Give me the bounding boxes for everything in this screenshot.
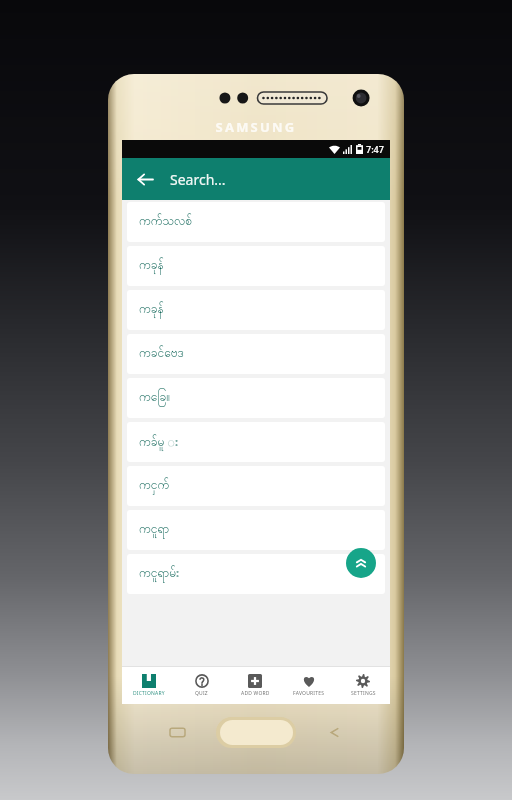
staticText: ကခုန် (139, 257, 164, 275)
staticText: ကငှက် (139, 477, 170, 495)
staticText: DICTIONARY (133, 690, 165, 697)
button[interactable]: ကငူရာ (127, 510, 385, 550)
button[interactable]: ကခြေ။ (127, 378, 385, 418)
staticText: 7:47 (366, 143, 384, 155)
button[interactable]: ကငှက် (127, 466, 385, 506)
staticText: Search... (170, 170, 226, 189)
staticText: QUIZ (195, 690, 208, 697)
button[interactable]: Back (128, 162, 162, 196)
staticText: ကခ်မူ း (139, 433, 178, 452)
staticText: ကခြေ။ (139, 389, 170, 407)
staticText: ကငူရာ (139, 521, 170, 539)
staticText: ကခုန် (139, 301, 164, 319)
button[interactable]: Scroll to top (346, 548, 376, 578)
button[interactable]: SETTINGS (336, 666, 390, 704)
staticText: ကခင်ဗေဒ (139, 345, 184, 363)
staticText: FAVOURITES (293, 690, 325, 697)
button[interactable]: ADD WORD (228, 666, 282, 704)
button[interactable]: ကခုန် (127, 290, 385, 330)
button[interactable]: ကခုန် (127, 246, 385, 286)
button[interactable]: QUIZ (175, 666, 228, 704)
staticText: SAMSUNG (108, 118, 404, 136)
button[interactable]: ကငူရာမ်း (127, 554, 385, 594)
button[interactable]: ကက်သလစ် (127, 202, 385, 242)
button[interactable]: DICTIONARY (122, 666, 175, 704)
staticText: SETTINGS (351, 690, 376, 697)
button[interactable]: FAVOURITES (282, 666, 336, 704)
staticText: ကငူရာမ်း (139, 565, 180, 583)
button[interactable]: ကခင်ဗေဒ (127, 334, 385, 374)
staticText: ADD WORD (241, 690, 270, 697)
staticText: ကက်သလစ် (139, 213, 193, 231)
button[interactable]: ကခ်မူ း (127, 422, 385, 462)
